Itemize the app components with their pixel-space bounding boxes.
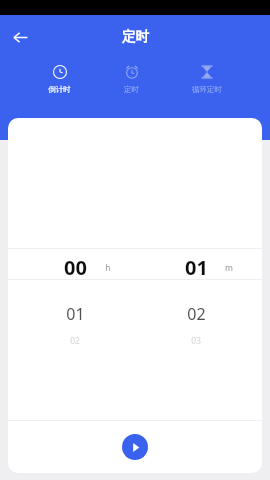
button[interactable]: 倒计时: [46, 65, 73, 94]
staticText: 02: [187, 303, 206, 325]
staticText: 倒计时: [48, 85, 71, 94]
button[interactable]: 定时: [122, 65, 141, 94]
staticText: 循环定时: [192, 85, 222, 94]
button[interactable]: 循环定时: [190, 65, 224, 94]
staticText: 03: [191, 335, 201, 347]
staticText: 02: [70, 335, 80, 347]
staticText: 01: [185, 254, 208, 281]
button[interactable]: Start timer: [122, 434, 148, 460]
staticText: h: [105, 262, 111, 274]
staticText: 定时: [122, 28, 149, 45]
staticText: 00: [64, 254, 87, 281]
staticText: 01: [66, 303, 85, 325]
button[interactable]: Back: [6, 23, 34, 51]
staticText: m: [225, 262, 233, 274]
staticText: 定时: [124, 85, 139, 94]
